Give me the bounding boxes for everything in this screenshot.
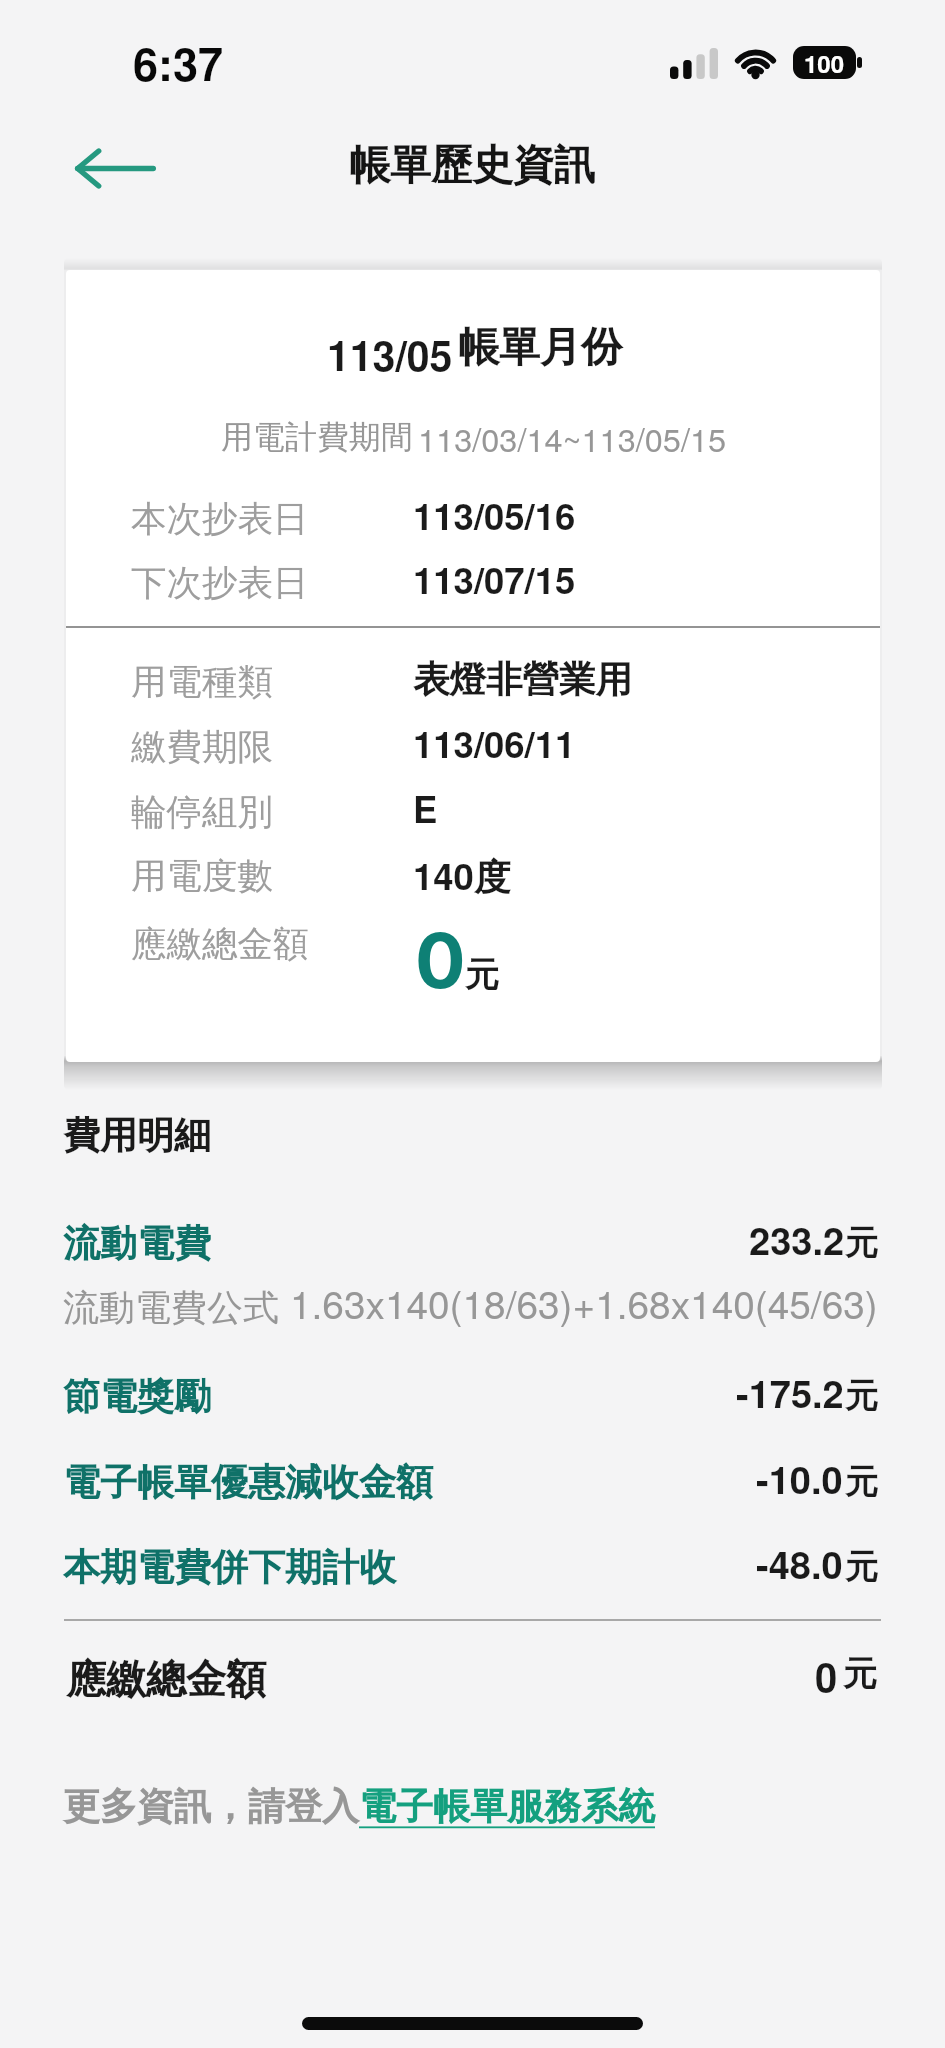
staticText: 節電獎勵 (63, 1373, 211, 1420)
button[interactable]: 電子帳單服務系統 (359, 1783, 655, 1830)
button[interactable]: Back (54, 126, 176, 211)
staticText: 1.63x140(18/63)+1.68x140(45/63) (290, 1274, 878, 1330)
staticText: 113/06/11 (413, 717, 576, 769)
staticText: 113/07/15 (413, 553, 576, 605)
staticText: 費用明細 (63, 1112, 211, 1159)
staticText: 233.2 (749, 1212, 845, 1264)
staticText: 流動電費 (63, 1220, 211, 1267)
staticText: 表燈非營業用 (413, 657, 632, 703)
button[interactable]: 本期電費併下期計收 (63, 1544, 878, 1596)
staticText: 用電度數 (131, 854, 273, 899)
staticText: 0 (415, 915, 466, 1006)
staticText: 元 (845, 1546, 878, 1588)
staticText: 100 (804, 46, 845, 79)
staticText: 113/05 (327, 325, 453, 384)
staticText: 元 (845, 1222, 878, 1264)
staticText: 本次抄表日 (131, 497, 309, 542)
staticText: 6:37 (133, 30, 224, 94)
staticText: -175.2 (736, 1365, 844, 1417)
staticText: 用電計費期間 (221, 417, 413, 457)
staticText: 帳單歷史資訊 (349, 140, 595, 192)
staticText: -10.0 (756, 1451, 843, 1503)
staticText: -48.0 (756, 1536, 843, 1588)
staticText: 113/03/14~113/05/15 (418, 415, 727, 462)
button[interactable]: 節電獎勵 (63, 1373, 878, 1425)
staticText: 帳單月份 (458, 322, 622, 374)
staticText: 元 (845, 1461, 878, 1503)
staticText: 輪停組別 (131, 790, 273, 835)
button[interactable]: 電子帳單優惠減收金額 (63, 1459, 878, 1511)
staticText: 繳費期限 (131, 725, 273, 770)
staticText: 應繳總金額 (66, 1654, 266, 1704)
staticText: 元 (845, 1375, 878, 1417)
staticText: 元 (843, 1652, 877, 1695)
button[interactable]: 流動電費 (63, 1220, 878, 1272)
staticText: 電子帳單服務系統 (359, 1783, 655, 1830)
staticText: 本期電費併下期計收 (63, 1544, 396, 1591)
staticText: 電子帳單優惠減收金額 (63, 1459, 433, 1506)
staticText: 113/05/16 (413, 489, 576, 541)
staticText: 流動電費公式 (63, 1279, 290, 1331)
staticText: 下次抄表日 (131, 561, 309, 606)
staticText: 用電種類 (131, 660, 273, 705)
staticText: 應繳總金額 (131, 922, 309, 967)
staticText: 元 (465, 953, 499, 996)
staticText: 140度 (413, 849, 511, 901)
staticText: E (413, 782, 438, 834)
staticText: 0 (815, 1647, 838, 1704)
staticText: 更多資訊，請登入 (63, 1783, 359, 1830)
